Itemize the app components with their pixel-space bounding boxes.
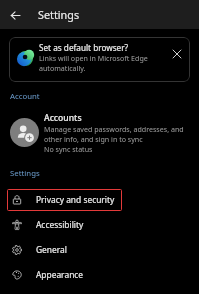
staticText: Manage saved passwords, addresses, and o…	[44, 124, 192, 144]
button[interactable]: Back	[6, 6, 24, 24]
button[interactable]: Accessibility	[7, 212, 122, 237]
staticText: Set as default browser?	[39, 42, 129, 53]
button[interactable]: General	[7, 237, 122, 262]
staticText: No sync status	[44, 144, 93, 154]
staticText: Links will open in Microsoft Edge automa…	[39, 53, 187, 73]
staticText: Accounts	[44, 112, 82, 124]
button[interactable]: Privacy and security	[7, 187, 122, 212]
button[interactable]: Appearance	[7, 262, 122, 287]
staticText: Settings	[38, 7, 80, 22]
button[interactable]: Accounts	[0, 110, 199, 158]
button[interactable]: Set as default browser?	[9, 37, 190, 82]
staticText: General	[36, 244, 67, 255]
staticText: Account	[10, 91, 40, 102]
staticText: Accessibility	[36, 219, 84, 230]
staticText: Privacy and security	[36, 194, 115, 205]
button[interactable]: Dismiss	[168, 45, 186, 63]
staticText: Settings	[10, 168, 40, 179]
staticText: Appearance	[36, 269, 84, 280]
